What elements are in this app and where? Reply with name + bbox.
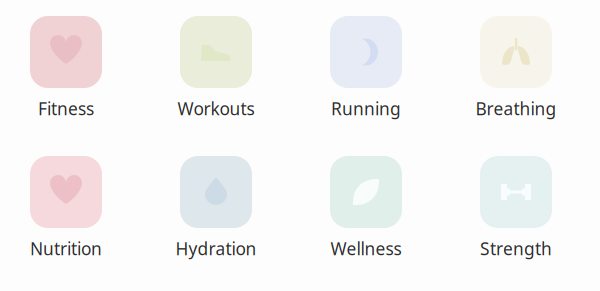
staticText: Hydration	[175, 237, 256, 260]
button[interactable]: Wellness	[300, 156, 450, 260]
staticText: Fitness	[38, 97, 94, 120]
button[interactable]: Nutrition	[0, 156, 150, 260]
staticText: Nutrition	[30, 237, 102, 260]
staticText: Workouts	[177, 97, 254, 120]
button[interactable]: Fitness	[0, 16, 150, 120]
button[interactable]: Hydration	[150, 156, 300, 260]
staticText: Running	[331, 97, 401, 120]
staticText: Breathing	[475, 97, 556, 120]
button[interactable]: Workouts	[150, 16, 300, 120]
button[interactable]: Strength	[450, 156, 600, 260]
staticText: Wellness	[330, 237, 401, 260]
staticText: Strength	[480, 237, 552, 260]
button[interactable]: Running	[300, 16, 450, 120]
button[interactable]: Breathing	[450, 16, 600, 120]
